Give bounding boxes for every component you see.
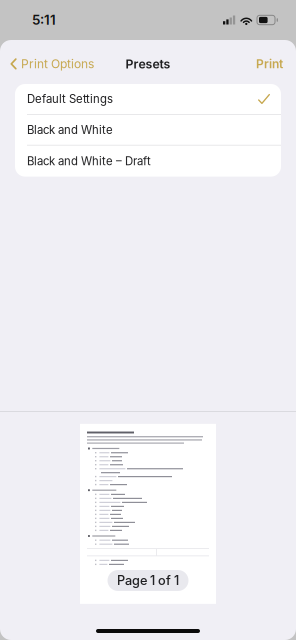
button[interactable]: Black and White – Draft	[15, 146, 281, 177]
button[interactable]: Print Options	[0, 48, 102, 80]
staticText: Black and White – Draft	[27, 154, 151, 168]
staticText: Black and White	[27, 123, 113, 137]
button[interactable]: Default Settings	[15, 84, 281, 115]
staticText: Presets	[125, 57, 170, 71]
staticText: Print	[256, 57, 283, 71]
staticText: 5:11	[32, 12, 56, 28]
staticText: Print Options	[21, 57, 94, 71]
staticText: Page 1 of 1	[117, 573, 179, 588]
button[interactable]: Black and White	[15, 115, 281, 146]
button[interactable]: Print	[244, 48, 296, 80]
button[interactable]: Page 1 of 1	[107, 570, 188, 591]
staticText: Default Settings	[27, 92, 113, 106]
